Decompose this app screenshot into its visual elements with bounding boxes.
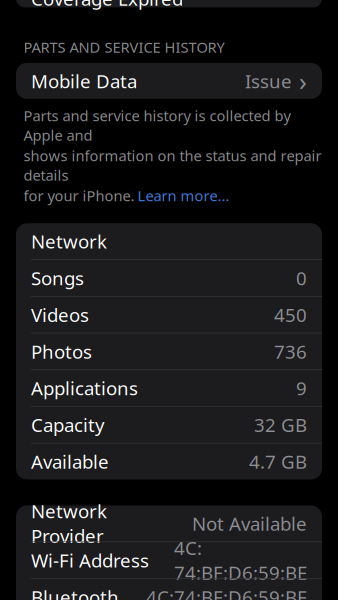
- staticText: 450: [274, 302, 307, 327]
- staticText: Wi-Fi Address: [31, 548, 149, 573]
- staticText: 9: [296, 376, 307, 400]
- staticText: Capacity: [31, 412, 105, 437]
- staticText: Network Provider: [31, 499, 107, 548]
- staticText: Coverage Expired: [31, 0, 183, 11]
- staticText: 4C:74:BF:D6:59:BF: [146, 584, 307, 600]
- staticText: Not Available: [192, 511, 307, 536]
- staticText: 736: [274, 339, 307, 364]
- staticText: Available: [31, 449, 109, 474]
- staticText: Parts and service history is collected b…: [23, 106, 290, 145]
- staticText: 4C:74:BF:D6:59:BE: [174, 535, 307, 585]
- staticText: Learn more...: [137, 186, 229, 205]
- staticText: Applications: [31, 376, 138, 400]
- staticText: for your iPhone.: [23, 186, 134, 205]
- staticText: Mobile Data: [31, 68, 137, 93]
- staticText: Videos: [31, 302, 89, 327]
- staticText: Issue: [245, 68, 292, 93]
- staticText: 0: [296, 266, 307, 290]
- staticText: 32 GB: [254, 412, 307, 437]
- staticText: ›: [299, 64, 307, 98]
- staticText: Photos: [31, 339, 92, 364]
- button[interactable]: Mobile Data: [16, 63, 322, 99]
- staticText: Network: [31, 229, 107, 254]
- staticText: Songs: [31, 266, 84, 290]
- button[interactable]: Learn more...: [137, 186, 229, 205]
- staticText: shows information on the status and repa…: [23, 146, 321, 185]
- staticText: 4.7 GB: [249, 449, 307, 474]
- staticText: PARTS AND SERVICE HISTORY: [23, 37, 224, 57]
- staticText: Bluetooth: [31, 584, 119, 600]
